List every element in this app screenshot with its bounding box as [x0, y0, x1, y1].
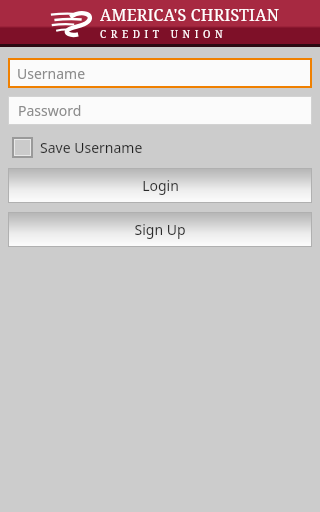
button[interactable]: Login	[8, 168, 312, 203]
staticText: Username	[17, 64, 86, 83]
staticText: Login	[142, 176, 179, 195]
button[interactable]: Sign Up	[8, 212, 312, 247]
button[interactable]: Password	[8, 96, 312, 125]
button[interactable]: Username	[8, 58, 312, 88]
staticText: Save Username	[40, 138, 143, 157]
staticText: AMERICA'S CHRISTIAN	[100, 4, 280, 26]
other: America's Christian Credit Union logo	[50, 8, 94, 38]
staticText: Password	[18, 101, 82, 120]
staticText: CREDIT UNION	[100, 27, 228, 41]
staticText: Sign Up	[134, 220, 186, 239]
button[interactable]: Save Username	[12, 137, 143, 158]
